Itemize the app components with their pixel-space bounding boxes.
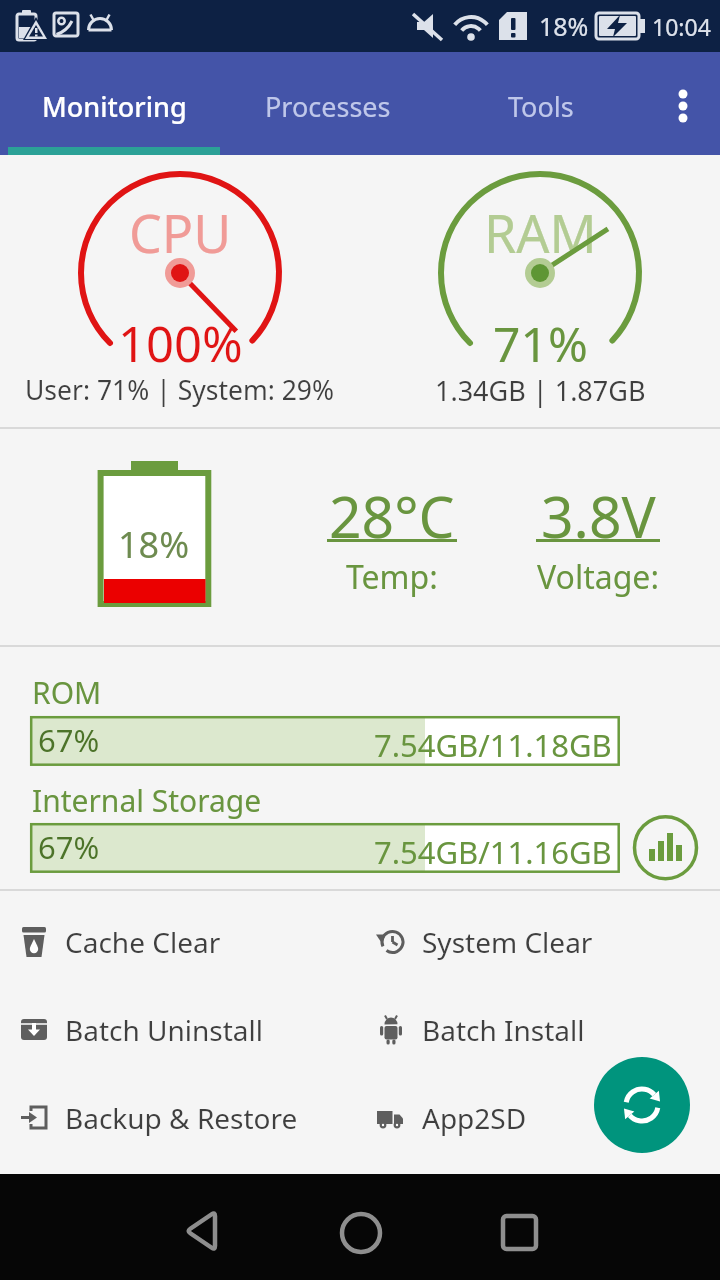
staticText: 3.8V: [541, 477, 656, 547]
staticText: CPU: [129, 197, 232, 267]
button[interactable]: App2SD: [371, 1082, 701, 1154]
staticText: 67%: [38, 826, 100, 868]
button[interactable]: Cache Clear: [14, 906, 344, 978]
staticText: User: 71% | System: 29%: [25, 372, 335, 408]
staticText: 7.54GB/11.16GB: [374, 831, 612, 873]
staticText: Internal Storage: [32, 780, 262, 821]
staticText: 71%: [493, 311, 588, 376]
staticText: 18%: [118, 520, 190, 569]
staticText: 100%: [118, 310, 243, 377]
button[interactable]: System Clear: [371, 906, 701, 978]
staticText: RAM: [484, 197, 597, 267]
button[interactable]: [634, 816, 697, 879]
staticText: Tools: [508, 88, 574, 125]
staticText: 7.54GB/11.18GB: [374, 724, 612, 766]
staticText: Cache Clear: [65, 923, 221, 961]
button[interactable]: Backup & Restore: [14, 1082, 344, 1154]
staticText: Batch Install: [422, 1011, 585, 1049]
button[interactable]: [240, 1174, 480, 1280]
staticText: 18%: [539, 9, 589, 43]
staticText: 10:04: [652, 11, 711, 42]
button[interactable]: Processes: [221, 52, 434, 155]
staticText: Batch Uninstall: [65, 1011, 264, 1049]
button[interactable]: [647, 52, 720, 155]
staticText: 67%: [38, 719, 100, 761]
staticText: System Clear: [422, 923, 593, 961]
staticText: ROM: [32, 672, 102, 713]
staticText: Processes: [265, 88, 391, 125]
button[interactable]: [0, 1174, 240, 1280]
button[interactable]: [480, 1174, 720, 1280]
button[interactable]: Batch Uninstall: [14, 994, 344, 1066]
staticText: App2SD: [422, 1099, 527, 1137]
staticText: 28°C: [329, 477, 455, 547]
button[interactable]: Tools: [434, 52, 647, 155]
button[interactable]: [594, 1057, 690, 1153]
staticText: 1.34GB | 1.87GB: [435, 372, 646, 409]
staticText: Voltage:: [537, 555, 659, 599]
staticText: Temp:: [346, 555, 438, 599]
button[interactable]: Batch Install: [371, 994, 701, 1066]
staticText: Monitoring: [42, 88, 187, 125]
button[interactable]: Monitoring: [8, 52, 221, 155]
staticText: Backup & Restore: [65, 1099, 298, 1137]
